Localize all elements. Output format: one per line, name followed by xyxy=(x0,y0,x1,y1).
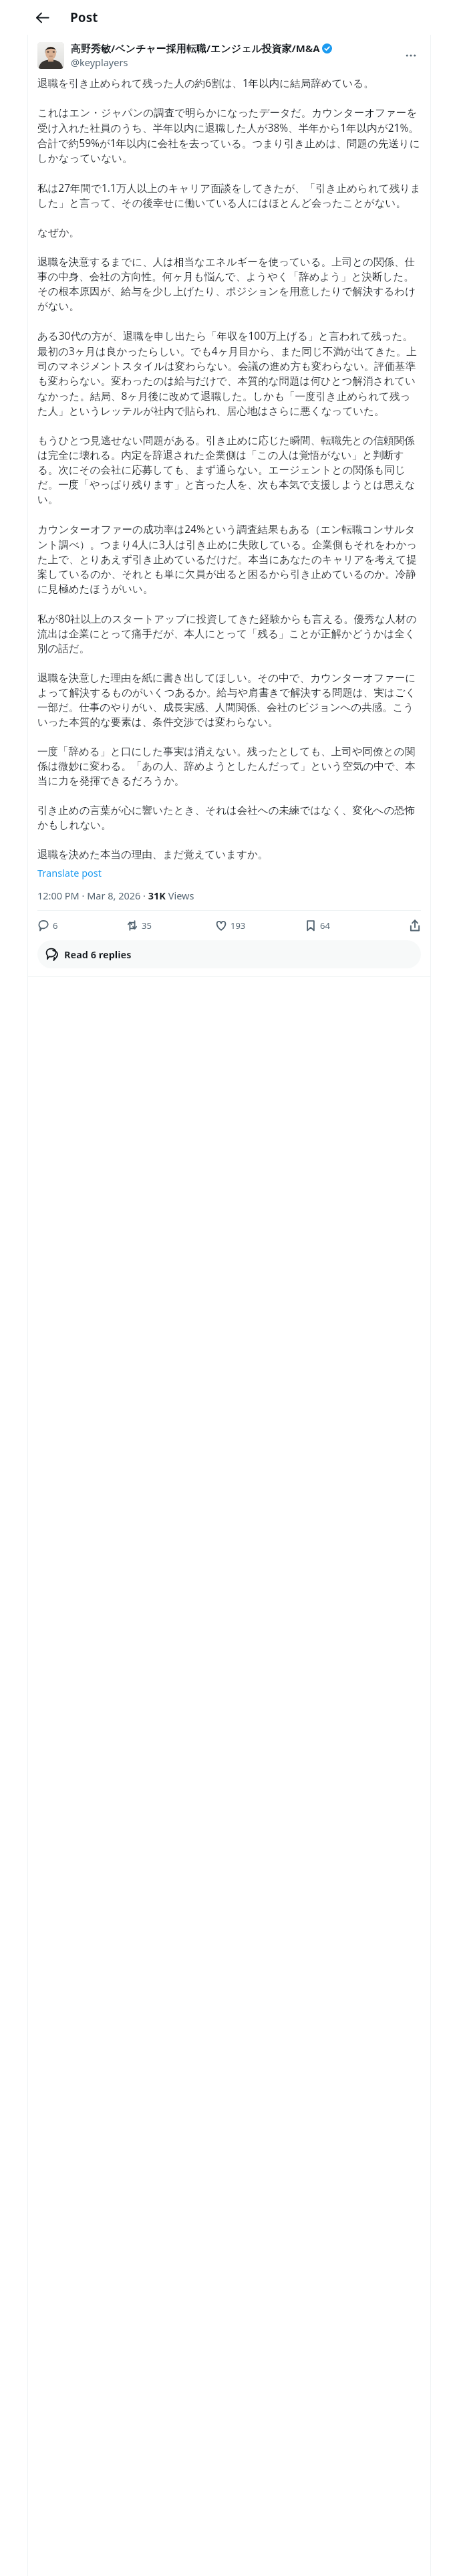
staticText: 193 xyxy=(231,920,246,932)
staticText: Read 6 replies xyxy=(64,948,132,961)
button[interactable]: Back xyxy=(27,3,57,32)
button[interactable]: Share xyxy=(394,912,421,939)
staticText: Post xyxy=(70,9,98,26)
staticText: カウンターオファーの成功率は24%という調査結果もある（エン転職コンサルタント調… xyxy=(37,522,421,597)
staticText: 引き止めの言葉が心に響いたとき、それは会社への未練ではなく、変化への恐怖かもしれ… xyxy=(37,803,421,833)
staticText: ある30代の方が、退職を申し出たら「年収を100万上げる」と言われて残った。最初… xyxy=(37,328,421,419)
button[interactable]: Like xyxy=(215,911,305,940)
staticText: Translate post xyxy=(37,866,102,879)
button[interactable]: More options xyxy=(401,45,421,66)
staticText: 退職を決意するまでに、人は相当なエネルギーを使っている。上司との関係、仕事の中身… xyxy=(37,255,421,314)
button[interactable]: Reply xyxy=(37,911,126,940)
staticText: 私が80社以上のスタートアップに投資してきた経験からも言える。優秀な人材の流出は… xyxy=(37,611,421,656)
staticText: @keyplayers xyxy=(71,56,128,69)
button[interactable]: Repost xyxy=(126,911,215,940)
staticText: 高野秀敏/ベンチャー採用転職/エンジェル投資家/M&A xyxy=(71,41,320,55)
staticText: 私は27年間で1.1万人以上のキャリア面談をしてきたが、「引き止められて残りまし… xyxy=(37,181,421,211)
staticText: 35 xyxy=(142,920,152,932)
staticText: 12:00 PM · Mar 8, 2026 · 31K Views xyxy=(37,889,194,902)
staticText: 一度「辞める」と口にした事実は消えない。残ったとしても、上司や同僚との関係は微妙… xyxy=(37,744,421,788)
staticText: もうひとつ見逃せない問題がある。引き止めに応じた瞬間、転職先との信頼関係は完全に… xyxy=(37,433,421,507)
button[interactable]: Translate post xyxy=(37,866,102,879)
staticText: これはエン・ジャパンの調査で明らかになったデータだ。カウンターオファーを受け入れ… xyxy=(37,106,421,166)
staticText: なぜか。 xyxy=(37,225,421,240)
button[interactable]: Profile photo xyxy=(37,42,64,69)
staticText: 退職を引き止められて残った人の約6割は、1年以内に結局辞めている。 xyxy=(37,76,421,91)
staticText: 64 xyxy=(320,920,330,932)
button[interactable]: Read 6 replies xyxy=(37,940,421,968)
staticText: 6 xyxy=(53,920,58,932)
button[interactable]: Bookmark xyxy=(305,911,394,940)
staticText: 退職を決めた本当の理由、まだ覚えていますか。 xyxy=(37,847,421,862)
staticText: 退職を決意した理由を紙に書き出してほしい。その中で、カウンターオファーによって解… xyxy=(37,671,421,730)
